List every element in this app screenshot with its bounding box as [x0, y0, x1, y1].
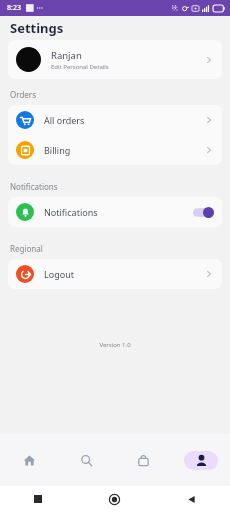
button[interactable]: Search [57, 434, 114, 486]
button[interactable]: Ranjan [8, 40, 222, 79]
staticText: Notifications [10, 181, 58, 192]
button[interactable]: All orders [8, 105, 222, 135]
staticText: Settings [10, 19, 64, 37]
button[interactable]: Back [153, 486, 230, 512]
staticText: Version 1.0 [0, 341, 230, 349]
staticText: Regional [10, 243, 43, 254]
staticText: 8:23 [7, 3, 21, 13]
button[interactable]: Billing [8, 135, 222, 165]
staticText: Ranjan [51, 49, 82, 62]
staticText: All orders [44, 114, 204, 126]
other: Open [204, 269, 214, 279]
staticText: Billing [44, 144, 204, 156]
button[interactable]: Profile [172, 434, 230, 486]
staticText: Notifications [44, 206, 193, 218]
other: Notifications toggle [193, 207, 214, 218]
button[interactable]: Home [76, 486, 153, 512]
staticText: Orders [10, 89, 36, 100]
button[interactable]: Bag [114, 434, 172, 486]
button[interactable]: Home [0, 434, 57, 486]
button[interactable]: Logout [8, 259, 222, 289]
other: Open [204, 55, 214, 65]
other: Open [204, 115, 214, 125]
other: Open [204, 145, 214, 155]
staticText: Logout [44, 268, 204, 280]
button[interactable]: Recents [0, 486, 76, 512]
staticText: Edit Personal Details [51, 63, 109, 71]
button[interactable]: Notifications [8, 197, 222, 227]
